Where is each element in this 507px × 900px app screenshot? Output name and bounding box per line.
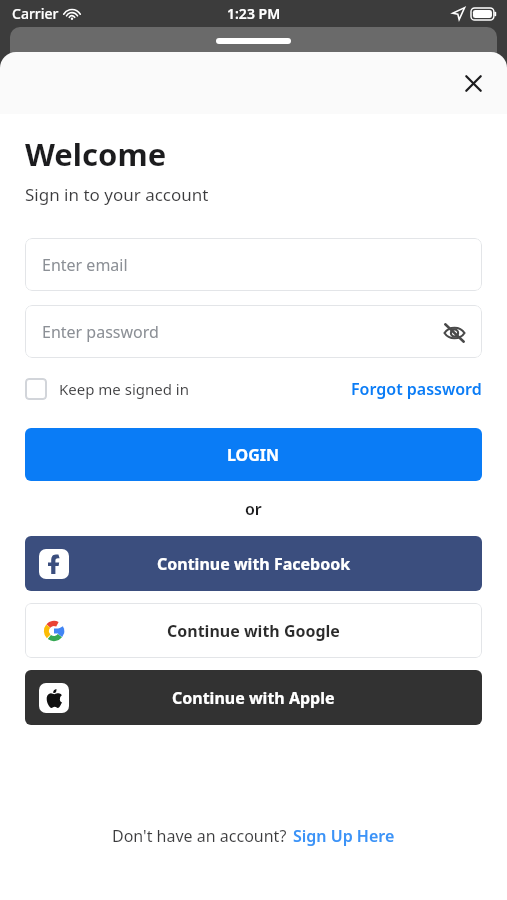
staticText: Keep me signed in xyxy=(59,379,189,399)
staticText: Continue with Google xyxy=(167,620,340,642)
staticText: Sign Up Here xyxy=(293,825,395,847)
button[interactable]: Continue with Apple xyxy=(25,670,482,725)
button[interactable]: Don't have an account? xyxy=(106,819,401,853)
staticText: LOGIN xyxy=(227,444,280,466)
staticText: or xyxy=(245,498,262,520)
button[interactable]: Close xyxy=(451,61,495,105)
button[interactable]: Forgot password xyxy=(351,374,482,404)
staticText: Don't have an account? xyxy=(112,825,287,847)
staticText: Sign in to your account xyxy=(25,183,209,206)
staticText: Enter email xyxy=(42,254,128,276)
staticText: Continue with Facebook xyxy=(157,553,351,575)
staticText: 1:23 PM xyxy=(227,4,281,23)
button[interactable]: Keep me signed in xyxy=(25,374,189,404)
staticText: Enter password xyxy=(42,321,159,343)
staticText: Carrier xyxy=(12,4,59,23)
button[interactable]: Enter password xyxy=(25,305,482,358)
button[interactable]: Continue with Facebook xyxy=(25,536,482,591)
button[interactable]: LOGIN xyxy=(25,428,482,481)
button[interactable]: Enter email xyxy=(25,238,482,291)
button[interactable]: Continue with Google xyxy=(25,603,482,658)
staticText: Forgot password xyxy=(351,378,482,400)
staticText: Continue with Apple xyxy=(172,687,335,709)
staticText: Welcome xyxy=(25,133,167,175)
button[interactable]: Show password xyxy=(434,312,474,352)
